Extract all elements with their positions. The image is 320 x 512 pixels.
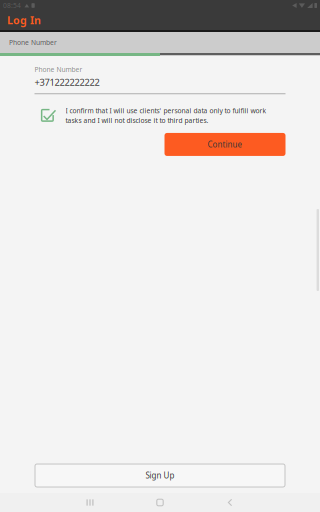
button[interactable]: Recent apps <box>58 493 122 512</box>
staticText: Continue <box>207 139 242 150</box>
staticText: +371222222222 <box>34 76 99 88</box>
staticText: I confirm that I will use clients' perso… <box>65 106 266 115</box>
staticText: Phone Number <box>9 38 57 47</box>
staticText: tasks and I will not disclose it to thir… <box>65 116 208 125</box>
staticText: Sign Up <box>145 470 174 481</box>
staticText: Log In <box>7 13 41 27</box>
staticText: Phone Number <box>34 65 82 74</box>
button[interactable]: Continue <box>164 133 285 156</box>
button[interactable]: Phone Number <box>0 32 160 53</box>
button[interactable]: Home <box>128 493 192 512</box>
button[interactable]: Back <box>198 493 262 512</box>
button[interactable]: Sign Up <box>35 464 285 487</box>
staticText: 08:54 <box>3 1 21 10</box>
